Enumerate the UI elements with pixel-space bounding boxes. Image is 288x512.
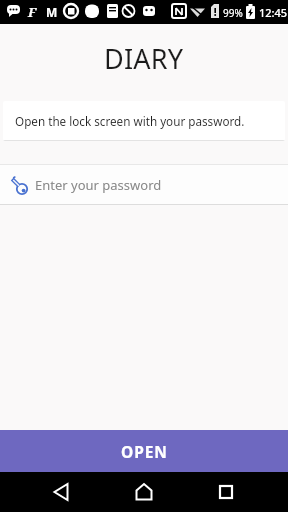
staticText: Enter your password	[35, 176, 162, 194]
staticText: 12:45	[259, 5, 288, 20]
button[interactable]: OPEN	[0, 430, 288, 472]
staticText: 99%	[223, 6, 243, 20]
staticText: OPEN	[121, 441, 168, 462]
button[interactable]	[124, 472, 164, 512]
button[interactable]: Enter your password	[0, 164, 288, 205]
button[interactable]	[206, 472, 246, 512]
staticText: F	[28, 3, 37, 21]
button[interactable]: Open the lock screen with your password.	[3, 101, 285, 141]
staticText: DIARY	[104, 40, 184, 77]
staticText: M	[46, 4, 58, 20]
staticText: Open the lock screen with your password.	[15, 113, 245, 129]
button[interactable]	[42, 472, 82, 512]
